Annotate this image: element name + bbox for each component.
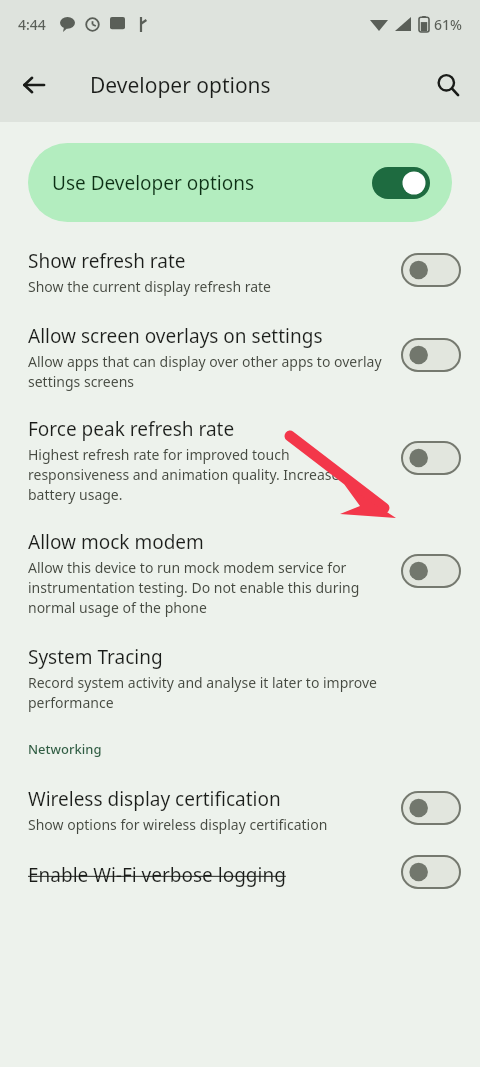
- staticText: Show the current display refresh rate: [28, 277, 272, 296]
- staticText: Show refresh rate: [28, 248, 186, 274]
- button[interactable]: Allow mock modem: [0, 524, 480, 617]
- staticText: System Tracing: [28, 644, 163, 670]
- staticText: Allow screen overlays on settings: [28, 323, 323, 349]
- staticText: Enable Wi-Fi verbose logging: [28, 862, 286, 888]
- staticText: Allow this device to run mock modem serv…: [28, 558, 388, 617]
- staticText: Show options for wireless display certif…: [28, 815, 328, 834]
- button[interactable]: Force peak refresh rate: [0, 411, 480, 504]
- staticText: Force peak refresh rate: [28, 416, 235, 442]
- staticText: Use Developer options: [52, 170, 372, 196]
- button[interactable]: System Tracing: [0, 639, 480, 712]
- button[interactable]: Wireless display certification: [0, 781, 480, 834]
- staticText: 4:44: [18, 15, 46, 34]
- staticText: Wireless display certification: [28, 786, 281, 812]
- button[interactable]: Allow screen overlays on settings: [0, 318, 480, 391]
- button[interactable]: Show refresh rate: [0, 243, 480, 296]
- staticText: Allow mock modem: [28, 529, 204, 555]
- staticText: Highest refresh rate for improved touch …: [28, 445, 388, 504]
- button[interactable]: Use Developer options: [28, 143, 452, 222]
- button[interactable]: Back: [10, 61, 58, 109]
- button[interactable]: Search: [424, 61, 472, 109]
- staticText: Developer options: [90, 71, 271, 100]
- staticText: Allow apps that can display over other a…: [28, 352, 388, 391]
- staticText: Record system activity and analyse it la…: [28, 673, 388, 712]
- button[interactable]: Enable Wi-Fi verbose logging: [0, 856, 480, 888]
- staticText: 61%: [434, 15, 462, 34]
- staticText: Networking: [28, 740, 102, 758]
